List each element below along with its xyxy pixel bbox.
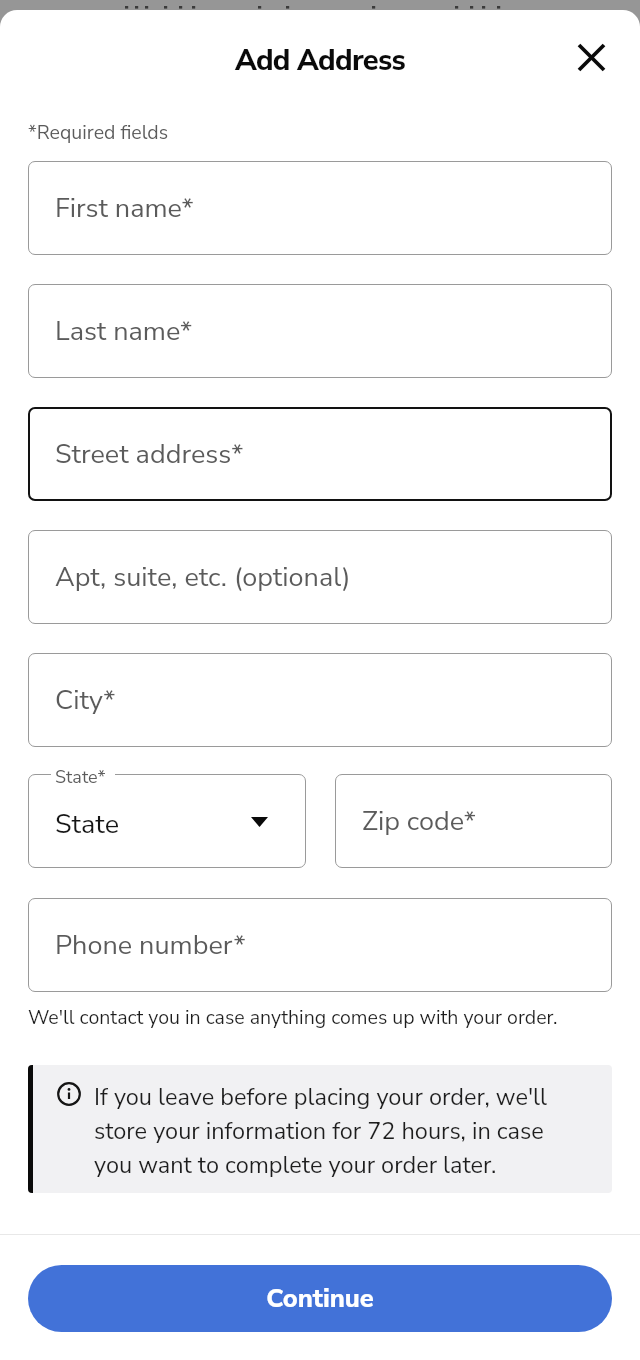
staticText: Phone number* xyxy=(55,927,246,964)
staticText: Continue xyxy=(266,1281,374,1316)
staticText: We'll contact you in case anything comes… xyxy=(28,1004,558,1031)
button[interactable]: First name* xyxy=(28,161,612,255)
button[interactable]: Phone number* xyxy=(28,898,612,992)
button[interactable]: Close xyxy=(565,31,617,83)
staticText: *Required fields xyxy=(28,119,169,146)
staticText: City* xyxy=(55,682,116,719)
staticText: Add Address xyxy=(235,41,406,81)
staticText: Apt, suite, etc. (optional) xyxy=(55,559,351,596)
button[interactable]: Zip code* xyxy=(335,774,612,868)
staticText: State* xyxy=(55,765,106,790)
button[interactable]: Continue xyxy=(28,1265,612,1332)
staticText: Zip code* xyxy=(362,803,476,840)
staticText: Last name* xyxy=(55,313,193,350)
button[interactable]: City* xyxy=(28,653,612,747)
button[interactable]: Apt, suite, etc. (optional) xyxy=(28,530,612,624)
staticText: First name* xyxy=(55,190,194,227)
other: Open state list xyxy=(251,817,268,827)
button[interactable]: State* xyxy=(28,774,306,868)
button[interactable]: Last name* xyxy=(28,284,612,378)
staticText: Street address* xyxy=(55,436,244,473)
staticText: If you leave before placing your order, … xyxy=(94,1081,584,1182)
button[interactable]: Street address* xyxy=(28,407,612,501)
staticText: State xyxy=(55,806,119,843)
